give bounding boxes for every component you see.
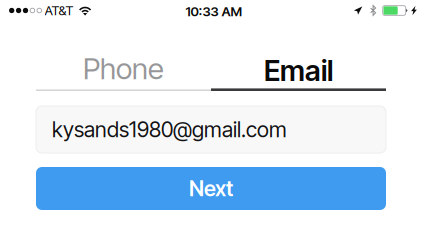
- staticText: 10:33 AM: [185, 3, 242, 19]
- button[interactable]: Phone: [36, 53, 211, 91]
- staticText: Next: [189, 176, 233, 201]
- staticText: kysands1980@gmail.com: [52, 117, 287, 142]
- button[interactable]: Email: [211, 53, 386, 91]
- staticText: Email: [264, 53, 333, 88]
- staticText: Phone: [83, 51, 164, 86]
- button[interactable]: Next: [36, 167, 386, 210]
- staticText: AT&T: [44, 2, 73, 18]
